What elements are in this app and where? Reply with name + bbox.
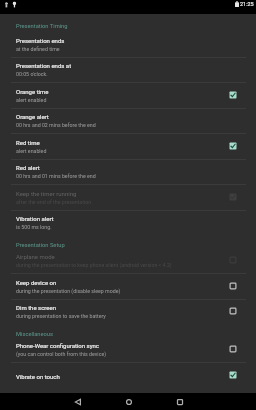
staticText: Vibrate on touch (16, 373, 60, 380)
button[interactable]: Orange alert (0, 108, 256, 134)
staticText: Presentation Setup (16, 242, 65, 249)
staticText: Keep the timer running (16, 190, 77, 197)
staticText: Dim the screen (16, 304, 56, 311)
staticText: during the presentation (disable sleep m… (16, 288, 121, 294)
button[interactable]: Red alert (0, 159, 256, 185)
staticText: Presentation Timing (16, 23, 68, 30)
button[interactable]: Airplane mode (0, 248, 256, 274)
button[interactable]: Orange time (0, 83, 256, 109)
staticText: 00 hrs and 02 mins before the end (16, 122, 96, 128)
button[interactable]: Presentation ends (0, 32, 256, 58)
staticText: Airplane mode (16, 253, 55, 260)
button[interactable]: Dim the screen (0, 299, 256, 325)
button[interactable]: Recent apps (154, 393, 205, 410)
staticText: (you can control both from this device) (16, 351, 106, 357)
staticText: Phone-Wear configuration sync (16, 342, 99, 349)
staticText: Presentation ends (16, 37, 65, 44)
button[interactable]: Keep device on (0, 274, 256, 300)
staticText: Vibration alert (16, 215, 54, 222)
staticText: Red time (16, 139, 40, 146)
staticText: Orange alert (16, 113, 49, 120)
staticText: Presentation ends at (16, 62, 72, 69)
staticText: at the defined time (16, 46, 60, 52)
staticText: alert enabled (16, 97, 47, 103)
staticText: alert enabled (16, 148, 47, 154)
button[interactable]: Presentation ends at (0, 57, 256, 83)
button[interactable]: Phone-Wear configuration sync (0, 337, 256, 363)
staticText: during presentation to save the battery (16, 313, 106, 319)
staticText: 00:05 o'clock. (16, 71, 48, 77)
staticText: is 500 ms long. (16, 224, 52, 230)
button[interactable]: Vibration alert (0, 210, 256, 236)
button[interactable]: Home (103, 393, 154, 410)
button[interactable]: Back (52, 393, 103, 410)
staticText: Red alert (16, 164, 40, 171)
staticText: during the presentation to keep phone si… (16, 262, 172, 268)
staticText: 21:25 (240, 1, 254, 7)
staticText: after the end of the presentation (16, 199, 92, 205)
button[interactable]: Vibrate on touch (0, 363, 256, 389)
staticText: Orange time (16, 88, 49, 95)
staticText: 00 hrs and 01 mins before the end (16, 173, 96, 179)
button[interactable]: Red time (0, 134, 256, 160)
button[interactable]: Keep the timer running (0, 185, 256, 211)
staticText: Keep device on (16, 279, 57, 286)
staticText: Miscellaneous (16, 331, 54, 338)
